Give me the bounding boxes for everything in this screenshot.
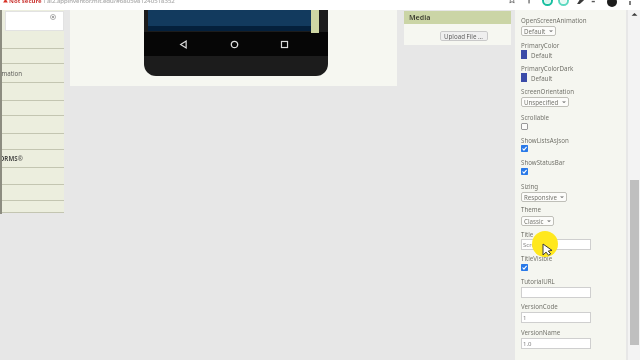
other: Not secure <box>3 0 8 3</box>
button[interactable]: Unspecified <box>524 97 566 107</box>
staticText: PrimaryColorDark <box>521 64 574 72</box>
staticText: Sizing <box>521 182 539 190</box>
button[interactable]: nimation <box>2 64 64 82</box>
button[interactable]: Reading list <box>527 0 535 4</box>
button[interactable]: Help <box>50 14 56 20</box>
staticText: Classic <box>524 217 544 225</box>
staticText: 1 <box>523 314 527 322</box>
button[interactable]: Toggle <box>521 168 528 175</box>
staticText: Screen1 <box>523 241 546 249</box>
staticText: Default <box>524 27 546 35</box>
staticText: VersionCode <box>521 302 558 310</box>
button[interactable]: Toggle <box>521 123 528 130</box>
button[interactable]: Bookmark <box>508 0 516 4</box>
button[interactable]: Default <box>521 73 553 82</box>
button[interactable]: Toggle <box>521 145 528 152</box>
staticText: Unspecified <box>524 98 559 106</box>
staticText: PrimaryColor <box>521 41 560 49</box>
button[interactable]: More <box>629 0 631 5</box>
button[interactable]: 1.0 <box>523 338 589 349</box>
button[interactable]: Recents <box>279 39 290 50</box>
staticText: Media <box>409 13 431 23</box>
button[interactable]: Extension <box>559 0 568 5</box>
staticText: Default <box>531 51 553 59</box>
button[interactable]: Help <box>5 11 64 31</box>
staticText: ScreenOrientation <box>521 87 575 95</box>
button[interactable]: Default <box>521 50 553 59</box>
button[interactable]: Extensions <box>576 0 585 5</box>
button[interactable]: Scroll up <box>631 11 638 18</box>
staticText: TitleVisible <box>521 254 553 262</box>
staticText: TORMS® <box>0 154 23 162</box>
staticText: Upload File ... <box>444 32 484 40</box>
button[interactable]: 1 <box>523 312 589 323</box>
button[interactable]: Extension <box>543 0 552 5</box>
button[interactable]: Upload File ... <box>444 32 484 40</box>
button[interactable]: Toggle <box>521 264 528 271</box>
staticText: ShowStatusBar <box>521 158 565 166</box>
button[interactable] <box>523 287 589 298</box>
button[interactable]: Classic <box>524 216 551 226</box>
button[interactable]: Default <box>524 26 553 36</box>
staticText: Not secure <box>9 0 42 4</box>
button[interactable]: Back <box>178 39 189 50</box>
staticText: ShowListsAsJson <box>521 136 569 144</box>
staticText: nimation <box>0 69 23 77</box>
button[interactable]: Home <box>229 39 240 50</box>
staticText: OpenScreenAnimation <box>521 16 587 24</box>
button[interactable]: Screen1 <box>523 239 589 250</box>
staticText: TutorialURL <box>521 277 555 285</box>
staticText: Scrollable <box>521 113 550 121</box>
staticText: Responsive <box>524 193 557 201</box>
staticText: 1.0 <box>523 340 532 348</box>
staticText: ai2.appinventor.mit.edu/#680598124051835… <box>47 0 175 4</box>
button[interactable]: Responsive <box>524 192 564 202</box>
button[interactable]: TORMS® <box>2 149 64 167</box>
staticText: Theme <box>521 205 542 213</box>
button[interactable]: Profile <box>607 0 617 7</box>
staticText: Default <box>531 74 553 82</box>
button[interactable]: Cast <box>591 0 598 4</box>
staticText: Title <box>521 230 534 238</box>
staticText: VersionName <box>521 328 561 336</box>
